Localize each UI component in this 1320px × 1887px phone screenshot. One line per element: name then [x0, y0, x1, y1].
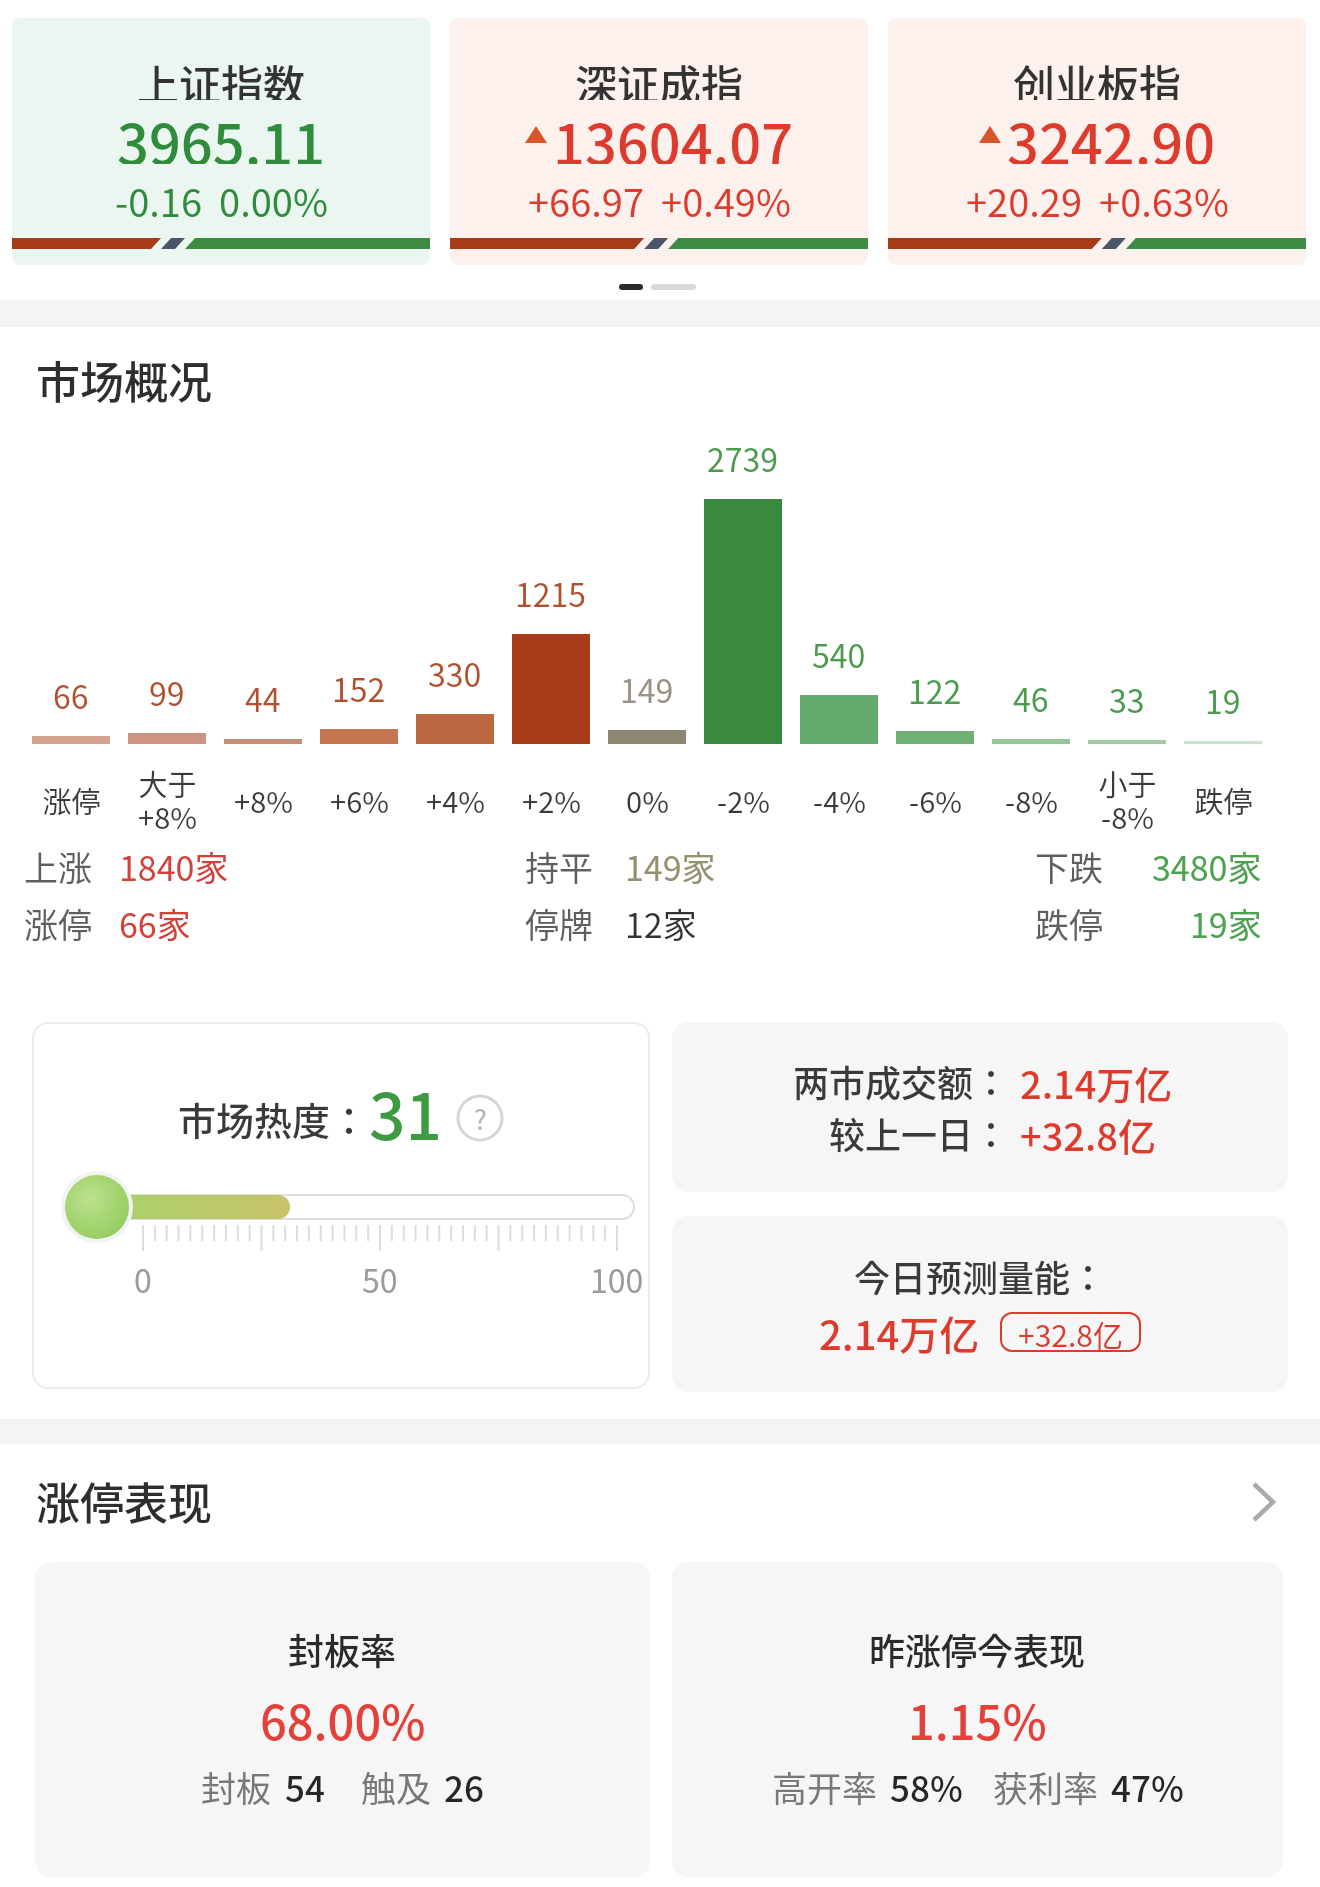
staticText: 19: [1205, 677, 1241, 723]
staticText: 1840家: [119, 842, 229, 891]
staticText: 上涨: [24, 842, 92, 891]
staticText: -8%: [1005, 779, 1058, 821]
staticText: 昨涨停今表现: [869, 1623, 1086, 1669]
staticText: 3965.11: [117, 100, 326, 164]
staticText: 122: [908, 667, 962, 713]
staticText: 99: [149, 669, 185, 715]
staticText: 0: [134, 1256, 152, 1302]
staticText: 540: [812, 631, 866, 677]
staticText: 44: [245, 675, 281, 721]
staticText: 50: [362, 1256, 398, 1302]
staticText: 触及: [361, 1761, 432, 1807]
staticText: 停牌: [525, 899, 593, 948]
staticText: ?: [474, 1099, 487, 1138]
staticText: +32.8亿: [1018, 1312, 1123, 1352]
staticText: 149: [620, 666, 674, 712]
staticText: 152: [332, 665, 386, 711]
staticText: +8%: [234, 779, 293, 821]
staticText: 2.14万亿: [819, 1304, 980, 1360]
staticText: 深证成指: [575, 52, 744, 100]
staticText: -6%: [909, 779, 962, 821]
staticText: 58%: [890, 1761, 963, 1807]
staticText: 3480家: [1152, 842, 1262, 891]
button[interactable]: 封板率: [35, 1562, 650, 1877]
staticText: -2%: [717, 779, 770, 821]
staticText: 149家: [625, 842, 716, 891]
staticText: -0.16 0.00%: [115, 173, 328, 217]
staticText: 下跌: [1035, 842, 1103, 891]
staticText: 13604.07: [553, 100, 794, 164]
staticText: 较上一日：: [829, 1107, 1010, 1155]
staticText: 26: [444, 1761, 484, 1807]
staticText: 100: [590, 1256, 644, 1302]
staticText: 3242.90: [1007, 100, 1216, 164]
staticText: 涨停: [42, 779, 101, 821]
staticText: 今日预测量能：: [854, 1250, 1107, 1296]
staticText: 封板: [201, 1761, 272, 1807]
button[interactable]: 两市成交额：: [672, 1022, 1288, 1192]
staticText: 33: [1109, 676, 1145, 722]
staticText: 高开率: [772, 1761, 878, 1807]
staticText: +20.29 +0.63%: [966, 173, 1229, 217]
staticText: 47%: [1111, 1761, 1184, 1807]
staticText: 19家: [1190, 899, 1262, 948]
staticText: 2739: [707, 435, 779, 481]
staticText: 上证指数: [137, 52, 306, 100]
staticText: +4%: [426, 779, 485, 821]
staticText: 12家: [625, 899, 697, 948]
staticText: 31: [369, 1066, 442, 1146]
staticText: +6%: [330, 779, 389, 821]
button[interactable]: 今日预测量能：: [672, 1216, 1288, 1392]
staticText: 涨停: [24, 899, 92, 948]
button[interactable]: [1252, 1482, 1276, 1522]
button[interactable]: 上证指数: [12, 18, 430, 265]
staticText: +2%: [522, 779, 581, 821]
staticText: 1.15%: [908, 1685, 1047, 1741]
staticText: 市场热度：: [178, 1091, 369, 1146]
button[interactable]: 昨涨停今表现: [672, 1562, 1283, 1877]
staticText: 创业板指: [1013, 52, 1182, 100]
staticText: 68.00%: [260, 1685, 426, 1741]
staticText: 市场概况: [36, 348, 212, 412]
button[interactable]: 创业板指: [888, 18, 1306, 265]
staticText: 0%: [626, 779, 669, 821]
staticText: 大于 +8%: [138, 762, 197, 838]
staticText: 66: [53, 672, 89, 718]
staticText: 66家: [119, 899, 191, 948]
staticText: 330: [428, 650, 482, 696]
staticText: +32.8亿: [1020, 1107, 1156, 1155]
staticText: 小于 -8%: [1098, 762, 1157, 838]
staticText: 2.14万亿: [1020, 1055, 1173, 1103]
button[interactable]: 市场热度：: [32, 1022, 650, 1389]
staticText: 两市成交额：: [793, 1055, 1010, 1103]
staticText: 持平: [525, 842, 593, 891]
staticText: 跌停: [1194, 779, 1253, 821]
staticText: 获利率: [993, 1761, 1099, 1807]
button[interactable]: 深证成指: [450, 18, 868, 265]
staticText: 封板率: [288, 1623, 397, 1669]
staticText: 跌停: [1035, 899, 1103, 948]
staticText: 54: [285, 1761, 325, 1807]
staticText: 涨停表现: [36, 1469, 212, 1533]
staticText: 1215: [515, 570, 587, 616]
staticText: -4%: [813, 779, 866, 821]
staticText: 46: [1013, 675, 1049, 721]
staticText: +66.97 +0.49%: [528, 173, 791, 217]
